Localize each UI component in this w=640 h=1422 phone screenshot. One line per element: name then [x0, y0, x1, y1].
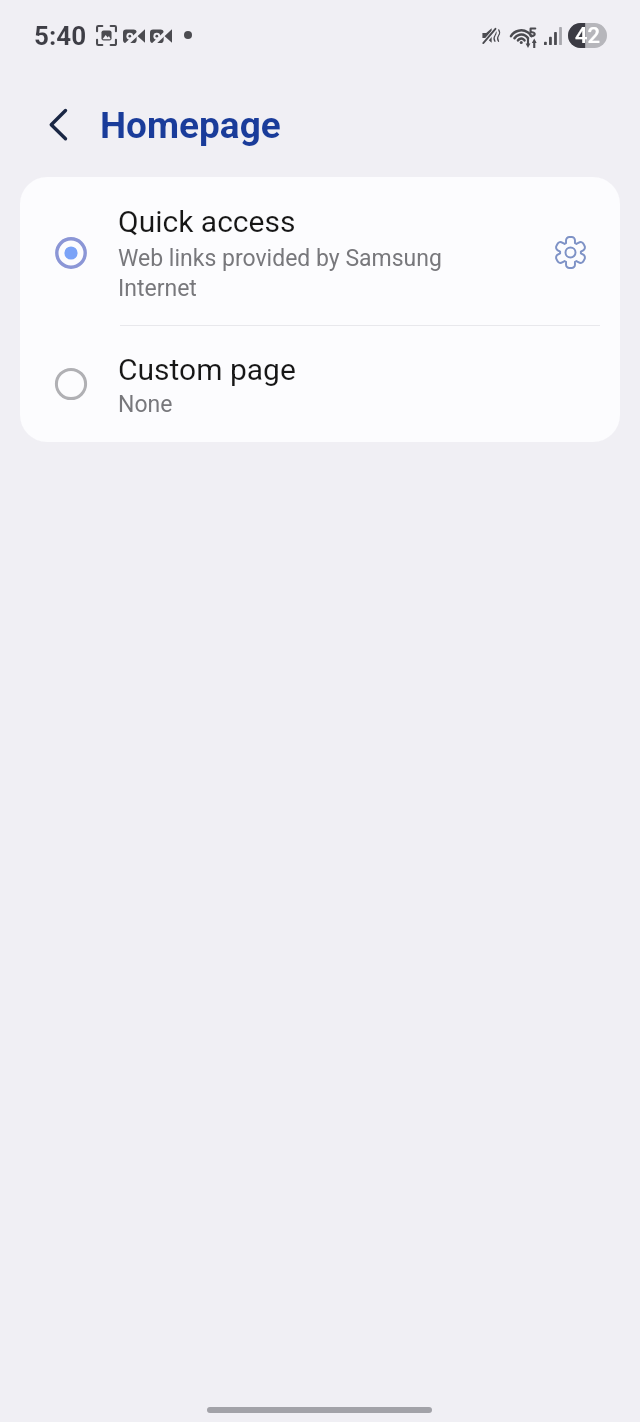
staticText: 42	[575, 23, 601, 48]
staticText: Web links provided by Samsung Internet	[118, 242, 448, 302]
staticText: Custom page	[118, 352, 296, 387]
staticText: None	[118, 391, 173, 418]
button[interactable]	[20, 325, 620, 442]
button[interactable]: Quick access settings	[538, 220, 602, 284]
button[interactable]: Navigate up	[26, 92, 90, 156]
button[interactable]	[20, 177, 520, 324]
staticText: Homepage	[100, 104, 281, 147]
staticText: 5:40	[34, 21, 87, 51]
staticText: Quick access	[118, 204, 296, 239]
